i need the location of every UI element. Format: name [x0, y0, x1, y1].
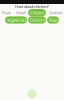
- button[interactable]: Dessert: [28, 16, 46, 24]
- button[interactable]: Chicken: [28, 9, 46, 16]
- staticText: Dessert: [30, 17, 44, 23]
- button[interactable]: Salad: [14, 9, 27, 16]
- button[interactable]: Soup: [47, 16, 59, 24]
- staticText: Chicken: [30, 10, 44, 15]
- staticText: Salad: [16, 10, 25, 15]
- button[interactable]: Pasta: [0, 9, 13, 16]
- staticText: How about chicken?: [15, 4, 49, 9]
- staticText: Pasta: [2, 10, 11, 15]
- button[interactable]: Vegetarian: [5, 16, 27, 24]
- staticText: Seafood: [49, 10, 62, 15]
- button[interactable]: Seafood: [47, 9, 64, 16]
- staticText: Vegetarian: [7, 17, 25, 23]
- staticText: Soup: [49, 17, 57, 23]
